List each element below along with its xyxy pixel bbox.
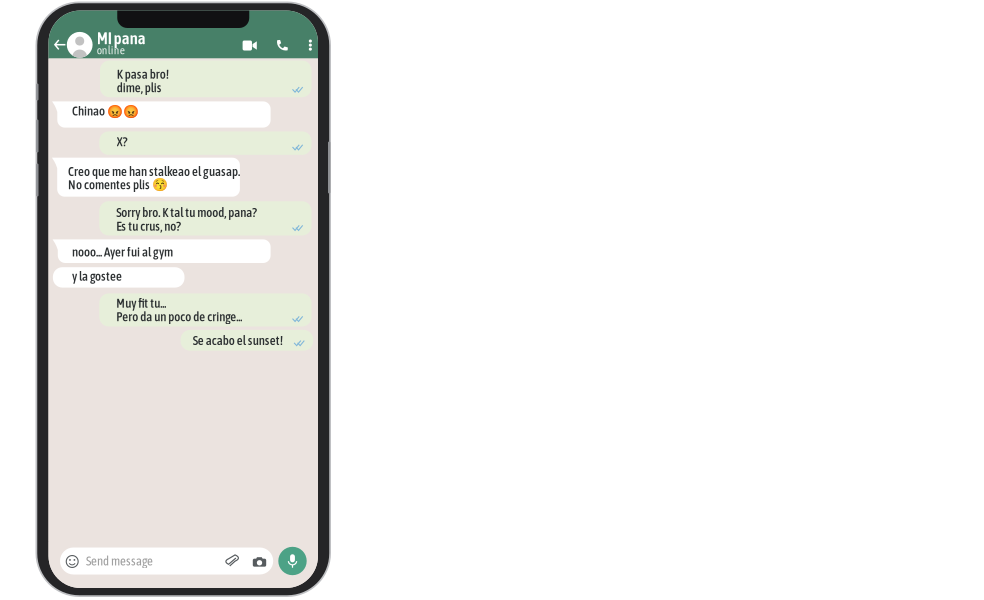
staticText: Muy fit tu... [116,296,166,310]
button[interactable]: Attach [220,550,244,572]
button[interactable]: Emoji [59,548,86,575]
staticText: X? [117,134,128,149]
staticText: Sorry bro. K tal tu mood, pana? [116,205,257,220]
staticText: Es tu crus, no? [116,219,181,233]
button[interactable]: Back [48,33,71,56]
button[interactable]: More options [302,32,319,58]
staticText: online [97,43,125,56]
button[interactable]: Camera [248,552,271,572]
staticText: K pasa bro! [117,67,169,81]
staticText: nooo... Ayer fui al gym [72,245,173,259]
staticText: Creo que me han stalkeao el guasap. [68,164,240,179]
staticText: MI pana [97,29,146,48]
button[interactable]: Contact profile [67,32,93,58]
staticText: Send message [86,553,153,568]
staticText: No comentes plis 😚 [68,177,168,192]
button[interactable]: Voice message [278,547,307,575]
staticText: Chinao 😡😡 [72,104,139,119]
staticText: dime, plis [117,80,162,95]
staticText: Pero da un poco de cringe... [116,309,242,324]
button[interactable]: Video call [236,33,264,57]
staticText: Se acabo el sunset! [193,333,283,348]
button[interactable]: Voice call [269,33,295,58]
staticText: y la gostee [72,269,122,284]
